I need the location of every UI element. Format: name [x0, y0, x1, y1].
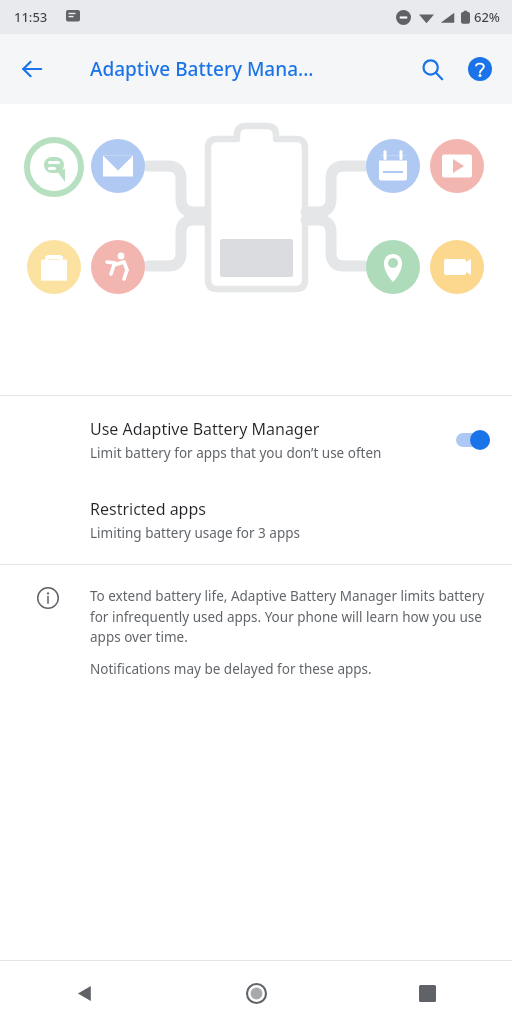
- button[interactable]: Use Adaptive Battery Manager: [0, 396, 512, 480]
- button[interactable]: Back: [8, 45, 56, 93]
- staticText: Adaptive Battery Mana...: [90, 56, 314, 82]
- staticText: Limiting battery usage for 3 apps: [90, 524, 300, 542]
- staticText: 62%: [474, 8, 500, 26]
- staticText: Notifications may be delayed for these a…: [90, 660, 372, 678]
- staticText: 11:53: [14, 8, 48, 26]
- staticText: To extend battery life, Adaptive Battery…: [90, 587, 490, 646]
- button[interactable]: Restricted apps: [0, 480, 512, 564]
- staticText: Use Adaptive Battery Manager: [90, 418, 320, 440]
- button[interactable]: Search: [408, 45, 456, 93]
- button[interactable]: Recent apps: [401, 967, 453, 1019]
- button[interactable]: Help: [456, 45, 504, 93]
- button[interactable]: Home: [230, 967, 282, 1019]
- staticText: Limit battery for apps that you don’t us…: [90, 444, 382, 462]
- staticText: Restricted apps: [90, 498, 206, 520]
- button[interactable]: Back: [59, 967, 111, 1019]
